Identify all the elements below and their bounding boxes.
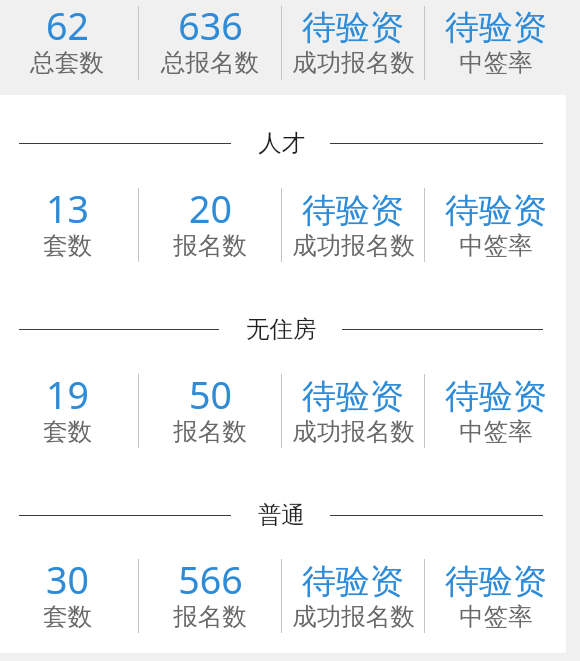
staticText: 待验资 <box>445 6 547 49</box>
staticText: 成功报名数 <box>292 416 415 447</box>
staticText: 待验资 <box>445 375 547 418</box>
button[interactable]: 50 <box>139 375 281 449</box>
button[interactable]: 62 <box>0 6 138 80</box>
staticText: 待验资 <box>302 560 404 603</box>
button[interactable]: 13 <box>0 189 138 263</box>
button[interactable]: 20 <box>139 189 281 263</box>
staticText: 成功报名数 <box>292 601 415 632</box>
button[interactable]: 待验资 <box>425 189 567 263</box>
staticText: 20 <box>189 183 232 234</box>
button[interactable]: 30 <box>0 560 138 634</box>
button[interactable]: 待验资 <box>282 189 424 263</box>
button[interactable]: 待验资 <box>425 560 567 634</box>
staticText: 19 <box>46 369 89 420</box>
staticText: 无住房 <box>246 314 317 344</box>
staticText: 报名数 <box>173 601 247 632</box>
staticText: 50 <box>189 369 232 420</box>
staticText: 中签率 <box>459 47 533 78</box>
button[interactable]: 待验资 <box>282 560 424 634</box>
button[interactable]: 待验资 <box>425 375 567 449</box>
button[interactable]: 19 <box>0 375 138 449</box>
staticText: 成功报名数 <box>292 47 415 78</box>
staticText: 30 <box>46 554 89 605</box>
staticText: 中签率 <box>459 601 533 632</box>
staticText: 套数 <box>43 416 92 447</box>
button[interactable]: 待验资 <box>282 6 424 80</box>
staticText: 待验资 <box>302 189 404 232</box>
button[interactable]: 566 <box>139 560 281 634</box>
staticText: 总报名数 <box>161 47 259 78</box>
staticText: 总套数 <box>30 47 104 78</box>
staticText: 成功报名数 <box>292 230 415 261</box>
button[interactable]: 636 <box>139 6 281 80</box>
staticText: 62 <box>46 0 89 51</box>
staticText: 566 <box>178 554 243 605</box>
staticText: 中签率 <box>459 230 533 261</box>
staticText: 报名数 <box>173 230 247 261</box>
staticText: 13 <box>46 183 89 234</box>
staticText: 待验资 <box>445 560 547 603</box>
staticText: 636 <box>178 0 243 51</box>
button[interactable]: 待验资 <box>282 375 424 449</box>
staticText: 待验资 <box>302 6 404 49</box>
staticText: 套数 <box>43 230 92 261</box>
staticText: 套数 <box>43 601 92 632</box>
staticText: 待验资 <box>302 375 404 418</box>
staticText: 普通 <box>258 500 305 530</box>
button[interactable]: 待验资 <box>425 6 567 80</box>
staticText: 报名数 <box>173 416 247 447</box>
staticText: 待验资 <box>445 189 547 232</box>
staticText: 人才 <box>258 128 305 158</box>
staticText: 中签率 <box>459 416 533 447</box>
